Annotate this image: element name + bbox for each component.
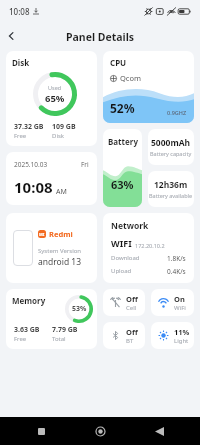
staticText: BT: [126, 337, 134, 345]
staticText: Qcom: [120, 73, 142, 83]
staticText: 1.8K/s: [167, 254, 186, 263]
staticText: 52%: [110, 100, 135, 116]
button[interactable]: CPU: [103, 51, 194, 123]
staticText: Free: [14, 335, 27, 343]
button[interactable]: 2025.10.03: [6, 152, 97, 205]
staticText: Total: [52, 335, 66, 343]
staticText: 11%: [174, 327, 190, 337]
staticText: Cell: [126, 304, 137, 312]
staticText: On: [174, 294, 185, 304]
staticText: Download: [111, 254, 140, 262]
staticText: Panel Details: [66, 30, 135, 44]
staticText: 2025.10.03: [14, 160, 48, 169]
staticText: AM: [56, 187, 67, 197]
staticText: WiFi: [174, 304, 186, 312]
staticText: Free: [14, 132, 27, 140]
staticText: WIFI: [111, 237, 132, 249]
staticText: Used: [48, 84, 62, 91]
button[interactable]: 5000mAh: [148, 129, 194, 165]
staticText: Network: [111, 220, 149, 232]
staticText: Disk: [12, 57, 30, 68]
staticText: Fri: [81, 160, 89, 169]
staticText: android 13: [38, 256, 82, 268]
button[interactable]: Battery: [103, 129, 142, 207]
staticText: System Version: [38, 247, 82, 255]
staticText: 172.20.10.2: [135, 242, 165, 249]
button[interactable]: Off: [103, 289, 145, 316]
staticText: MI: [39, 232, 45, 237]
staticText: Memory: [12, 295, 46, 306]
staticText: 65%: [45, 92, 65, 105]
button[interactable]: Home: [89, 420, 111, 442]
staticText: 53%: [72, 304, 87, 314]
staticText: Battery: [108, 136, 138, 147]
staticText: 63%: [111, 177, 134, 192]
staticText: Battery available: [149, 192, 193, 199]
button[interactable]: Back: [0, 25, 22, 47]
staticText: 3.63 GB: [14, 325, 40, 335]
button[interactable]: On: [151, 289, 194, 316]
staticText: 0.4K/s: [167, 267, 186, 276]
staticText: 7.79 GB: [52, 325, 78, 335]
button[interactable]: 11%: [151, 322, 194, 349]
button[interactable]: Off: [103, 322, 145, 349]
button[interactable]: MI: [6, 213, 97, 283]
staticText: Off: [126, 294, 138, 304]
button[interactable]: Network: [103, 213, 194, 283]
button[interactable]: Back: [148, 420, 170, 442]
staticText: 12h36m: [154, 179, 188, 191]
staticText: Disk: [52, 132, 65, 140]
staticText: Light: [174, 337, 189, 345]
staticText: 10:08: [14, 177, 53, 197]
button[interactable]: Disk: [6, 51, 97, 146]
button[interactable]: Recents: [30, 420, 52, 442]
staticText: Redmi: [49, 229, 73, 239]
staticText: Battery capacity: [150, 150, 192, 157]
staticText: 109 GB: [52, 122, 76, 132]
staticText: 5000mAh: [151, 137, 191, 149]
staticText: 10:08: [9, 6, 30, 17]
staticText: CPU: [110, 57, 127, 68]
button[interactable]: Memory: [6, 289, 97, 349]
staticText: Off: [126, 327, 138, 337]
staticText: Upload: [111, 267, 132, 275]
staticText: 0.9GHZ: [167, 109, 187, 116]
button[interactable]: 12h36m: [148, 171, 194, 207]
staticText: 37.32 GB: [14, 122, 44, 132]
